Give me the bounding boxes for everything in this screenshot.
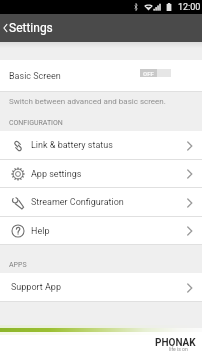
staticText: Settings [9,21,53,35]
staticText: Switch between advanced and basic screen… [9,97,166,106]
button[interactable]: Help [0,217,202,245]
button[interactable]: Basic Screen [0,60,202,92]
button[interactable]: Streamer Configuration [0,188,202,217]
button[interactable]: Back [0,14,202,42]
staticText: Help [31,226,50,237]
staticText: OFF [143,70,154,77]
other: Back [2,22,8,34]
button[interactable]: Link & battery status [0,131,202,160]
staticText: CONFIGURATION [9,119,63,127]
staticText: life is on [169,346,188,352]
staticText: 12:00 [178,2,201,13]
staticText: PHONAK [155,337,196,349]
button[interactable]: Support App [0,273,202,302]
staticText: Link & battery status [31,140,113,151]
button[interactable]: App settings [0,160,202,188]
staticText: Basic Screen [9,71,61,82]
button[interactable]: OFF [140,68,171,77]
staticText: APPS [9,261,27,269]
staticText: App settings [31,169,82,180]
staticText: Streamer Configuration [31,197,124,208]
staticText: Support App [11,282,61,293]
